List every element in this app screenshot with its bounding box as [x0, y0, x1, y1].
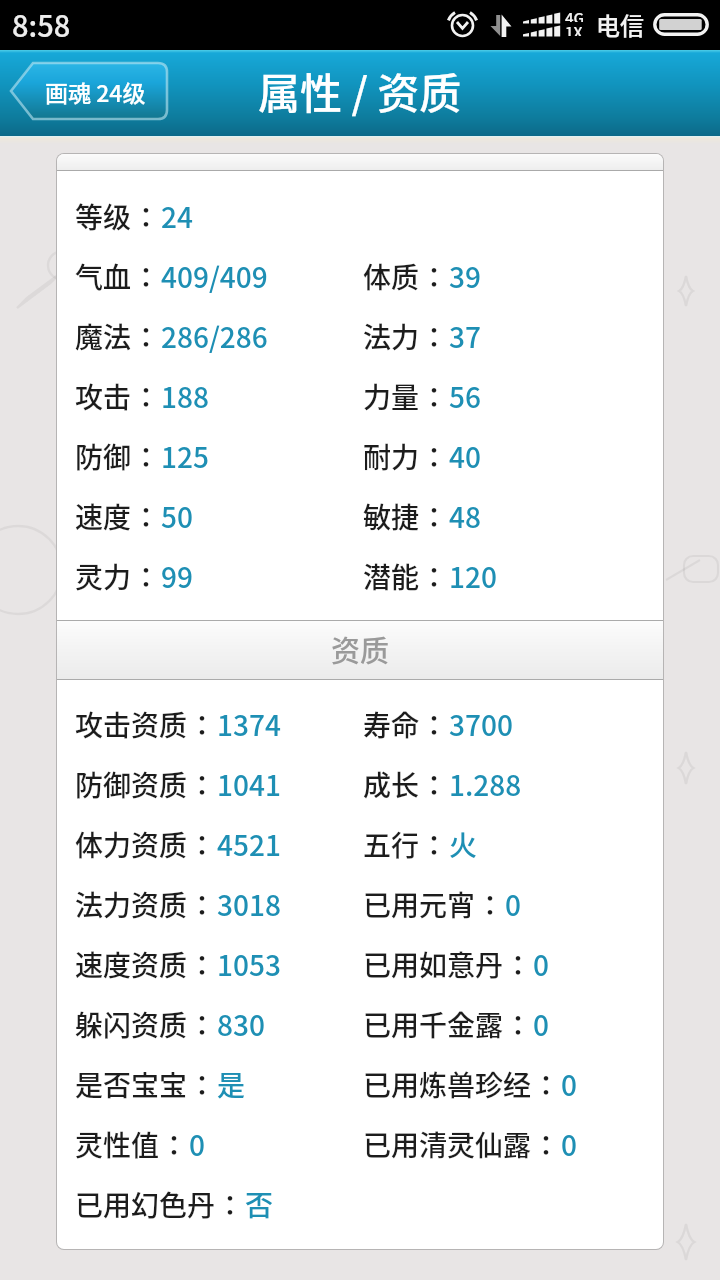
- staticText: 37: [449, 316, 481, 357]
- staticText: 防御资质: [75, 764, 188, 805]
- staticText: ：: [504, 1004, 533, 1045]
- staticText: 体力资质: [75, 824, 188, 865]
- staticText: 48: [449, 496, 481, 537]
- staticText: 409/409: [161, 256, 268, 297]
- staticText: 电信: [596, 7, 644, 42]
- staticText: ：: [420, 556, 449, 597]
- staticText: 50: [161, 496, 193, 537]
- staticText: 攻击资质: [75, 704, 188, 745]
- staticText: 资质: [331, 628, 390, 670]
- staticText: 体质: [363, 256, 420, 297]
- staticText: 火: [449, 824, 478, 865]
- staticText: 已用元宵: [363, 884, 476, 925]
- staticText: ：: [476, 884, 505, 925]
- staticText: ：: [420, 764, 449, 805]
- staticText: 125: [161, 436, 209, 477]
- staticText: 耐力: [363, 436, 420, 477]
- staticText: 法力: [363, 316, 420, 357]
- staticText: ：: [188, 824, 217, 865]
- button[interactable]: 返回: [11, 63, 167, 119]
- staticText: 0: [561, 1124, 577, 1165]
- staticText: ：: [188, 1064, 217, 1105]
- staticText: ：: [504, 944, 533, 985]
- staticText: 3018: [217, 884, 281, 925]
- staticText: ：: [132, 196, 161, 237]
- staticText: 速度资质: [75, 944, 188, 985]
- staticText: 已用炼兽珍经: [363, 1064, 532, 1105]
- staticText: ：: [532, 1124, 561, 1165]
- staticText: 属性 / 资质: [258, 60, 462, 121]
- staticText: 防御: [75, 436, 132, 477]
- staticText: 24: [161, 196, 193, 237]
- staticText: 3700: [449, 704, 513, 745]
- staticText: 120: [449, 556, 497, 597]
- staticText: 8:58: [12, 3, 71, 45]
- staticText: ：: [132, 556, 161, 597]
- staticText: ：: [420, 704, 449, 745]
- staticText: 是: [217, 1064, 246, 1105]
- staticText: ：: [188, 704, 217, 745]
- staticText: 830: [217, 1004, 265, 1045]
- staticText: 4521: [217, 824, 281, 865]
- staticText: 是否宝宝: [75, 1064, 188, 1105]
- staticText: 1374: [217, 704, 281, 745]
- staticText: ：: [420, 824, 449, 865]
- staticText: 0: [533, 1004, 549, 1045]
- staticText: ：: [188, 764, 217, 805]
- staticText: 286/286: [161, 316, 268, 357]
- staticText: ：: [188, 884, 217, 925]
- staticText: 气血: [75, 256, 132, 297]
- staticText: 188: [161, 376, 209, 417]
- staticText: ：: [132, 316, 161, 357]
- staticText: ：: [420, 436, 449, 477]
- staticText: ：: [420, 256, 449, 297]
- staticText: 0: [505, 884, 521, 925]
- staticText: 已用幻色丹: [75, 1184, 216, 1225]
- staticText: 成长: [363, 764, 420, 805]
- staticText: 灵力: [75, 556, 132, 597]
- staticText: 40: [449, 436, 481, 477]
- staticText: ：: [132, 376, 161, 417]
- staticText: 等级: [75, 196, 132, 237]
- staticText: 画魂 24级: [45, 75, 146, 108]
- staticText: 已用如意丹: [363, 944, 504, 985]
- staticText: 39: [449, 256, 481, 297]
- staticText: 1.288: [449, 764, 522, 805]
- staticText: 否: [245, 1184, 274, 1225]
- staticText: 99: [161, 556, 193, 597]
- staticText: 潜能: [363, 556, 420, 597]
- staticText: ：: [132, 436, 161, 477]
- staticText: 五行: [363, 824, 420, 865]
- staticText: 寿命: [363, 704, 420, 745]
- staticText: 已用清灵仙露: [363, 1124, 532, 1165]
- staticText: 1053: [217, 944, 281, 985]
- staticText: ：: [188, 944, 217, 985]
- staticText: ：: [188, 1004, 217, 1045]
- staticText: ：: [532, 1064, 561, 1105]
- staticText: 4G: [565, 7, 585, 22]
- staticText: ：: [132, 256, 161, 297]
- staticText: 灵性值: [75, 1124, 160, 1165]
- staticText: 敏捷: [363, 496, 420, 537]
- staticText: ：: [420, 376, 449, 417]
- staticText: 躲闪资质: [75, 1004, 188, 1045]
- staticText: 0: [533, 944, 549, 985]
- staticText: 1X: [565, 21, 583, 36]
- staticText: 1041: [217, 764, 281, 805]
- staticText: 力量: [363, 376, 420, 417]
- staticText: 攻击: [75, 376, 132, 417]
- staticText: 魔法: [75, 316, 132, 357]
- staticText: ：: [420, 316, 449, 357]
- staticText: 56: [449, 376, 481, 417]
- staticText: 0: [561, 1064, 577, 1105]
- staticText: ：: [420, 496, 449, 537]
- staticText: 已用千金露: [363, 1004, 504, 1045]
- staticText: ：: [160, 1124, 189, 1165]
- staticText: ：: [216, 1184, 245, 1225]
- staticText: 0: [189, 1124, 205, 1165]
- staticText: 速度: [75, 496, 132, 537]
- staticText: ：: [132, 496, 161, 537]
- staticText: 法力资质: [75, 884, 188, 925]
